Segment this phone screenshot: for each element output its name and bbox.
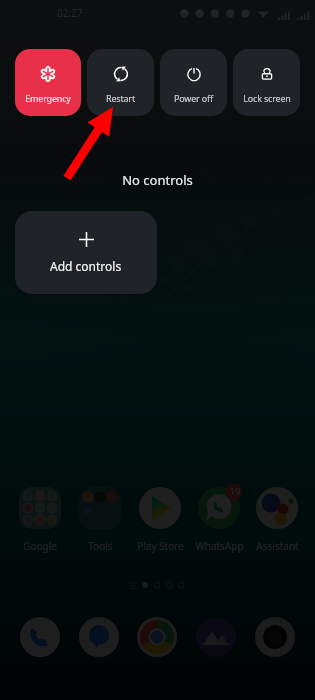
staticText: No controls — [0, 171, 315, 189]
staticText: Tools — [88, 539, 113, 553]
button[interactable]: Phone — [19, 616, 61, 658]
staticText: Play Store — [137, 539, 184, 553]
button[interactable]: Tools — [71, 485, 129, 553]
staticText: 02:27 — [57, 6, 83, 20]
button[interactable]: Play Store — [131, 485, 189, 553]
staticText: WhatsApp — [195, 539, 244, 553]
button[interactable]: Google — [11, 485, 69, 553]
button[interactable]: Camera — [254, 616, 296, 658]
button[interactable]: Chrome — [136, 616, 178, 658]
staticText: Google — [23, 539, 57, 553]
staticText: 19 — [230, 485, 241, 497]
button[interactable]: Add controls — [15, 211, 157, 294]
staticText: Restart — [106, 92, 135, 104]
staticText: Emergency — [25, 92, 71, 104]
button[interactable]: Photos — [195, 616, 237, 658]
button[interactable]: Lock screen — [233, 49, 300, 116]
staticText: Assistant — [256, 539, 299, 553]
button[interactable]: WhatsApp — [190, 485, 248, 553]
button[interactable]: Restart — [87, 49, 154, 116]
staticText: Lock screen — [243, 92, 291, 104]
staticText: Add controls — [50, 258, 122, 274]
button[interactable]: Emergency — [15, 49, 81, 116]
button[interactable]: Power off — [160, 49, 227, 116]
staticText: Power off — [174, 92, 213, 104]
button[interactable]: Assistant — [248, 485, 306, 553]
button[interactable]: Messages — [78, 616, 120, 658]
